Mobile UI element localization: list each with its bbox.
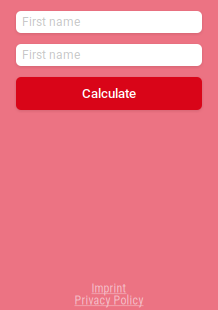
button[interactable]: Privacy Policy xyxy=(74,295,143,306)
button[interactable]: Calculate xyxy=(16,77,202,110)
button[interactable]: First name xyxy=(16,44,202,66)
staticText: Imprint xyxy=(91,281,126,296)
button[interactable]: First name xyxy=(16,11,202,33)
staticText: Privacy Policy xyxy=(74,293,143,308)
staticText: Calculate xyxy=(82,86,136,101)
staticText: First name xyxy=(22,48,80,62)
button[interactable]: Imprint xyxy=(91,283,126,294)
staticText: First name xyxy=(22,15,80,29)
